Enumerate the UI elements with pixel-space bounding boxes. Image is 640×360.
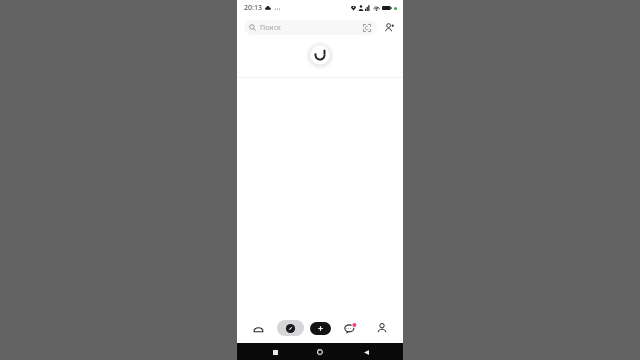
button[interactable]: Поиск (244, 20, 377, 35)
button[interactable]: Домой (312, 344, 328, 360)
button[interactable]: Профиль (369, 319, 395, 337)
button[interactable]: Сканировать (361, 22, 372, 33)
button[interactable]: Добавить друга (382, 20, 397, 35)
staticText: 20:13 (244, 3, 262, 13)
staticText: Поиск (260, 23, 361, 33)
button[interactable]: Назад (358, 344, 374, 360)
button[interactable]: Обзор (277, 320, 304, 336)
button[interactable]: Создать (310, 322, 331, 335)
button[interactable]: Сообщения (337, 319, 363, 337)
button[interactable]: Главная (245, 319, 271, 337)
button[interactable]: Недавние (267, 344, 283, 360)
